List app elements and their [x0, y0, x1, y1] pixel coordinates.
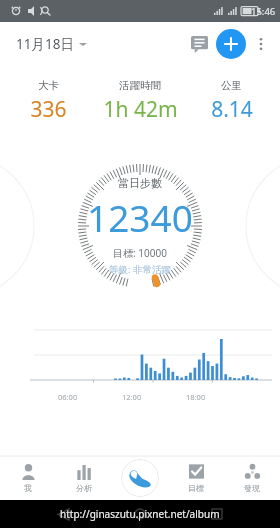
- staticText: 發現: [244, 483, 260, 493]
- button[interactable]: Recents: [203, 500, 231, 528]
- staticText: 15:46: [251, 5, 276, 18]
- button[interactable]: 發現: [224, 456, 280, 500]
- button[interactable]: Add: [216, 29, 246, 59]
- button[interactable]: Back: [49, 500, 77, 528]
- staticText: 336: [30, 95, 67, 124]
- staticText: 12340: [87, 192, 193, 242]
- button[interactable]: Messages: [182, 27, 216, 61]
- staticText: 12:00: [122, 392, 142, 402]
- staticText: 11月18日: [16, 35, 74, 53]
- button[interactable]: More options: [246, 29, 276, 59]
- button[interactable]: Activity: [121, 459, 159, 497]
- staticText: 1h 42m: [103, 95, 178, 124]
- button[interactable]: 我: [0, 456, 56, 500]
- staticText: 8.14: [211, 95, 253, 124]
- staticText: 分析: [76, 483, 92, 493]
- staticText: 活躍時間: [119, 79, 161, 92]
- staticText: 18:00: [186, 392, 206, 402]
- staticText: 我: [24, 483, 32, 493]
- button[interactable]: 06:00: [0, 318, 280, 404]
- staticText: 06:00: [58, 392, 78, 402]
- button[interactable]: 大卡: [6, 77, 91, 126]
- staticText: 公里: [221, 79, 242, 92]
- button[interactable]: 目標: [168, 456, 224, 500]
- button[interactable]: 分析: [56, 456, 112, 500]
- button[interactable]: 11月18日: [12, 31, 91, 57]
- staticText: 等級: 非常活躍: [109, 263, 172, 276]
- button[interactable]: Home: [126, 500, 154, 528]
- button[interactable]: 當日步數: [0, 126, 280, 318]
- staticText: 當日步數: [118, 176, 162, 190]
- staticText: 大卡: [38, 79, 59, 92]
- button[interactable]: 公里: [189, 77, 274, 126]
- staticText: http://ginaszutu.pixnet.net/album: [60, 507, 220, 521]
- staticText: 目標: [188, 483, 204, 493]
- staticText: 目標: 10000: [113, 246, 167, 260]
- button[interactable]: 活躍時間: [91, 77, 189, 126]
